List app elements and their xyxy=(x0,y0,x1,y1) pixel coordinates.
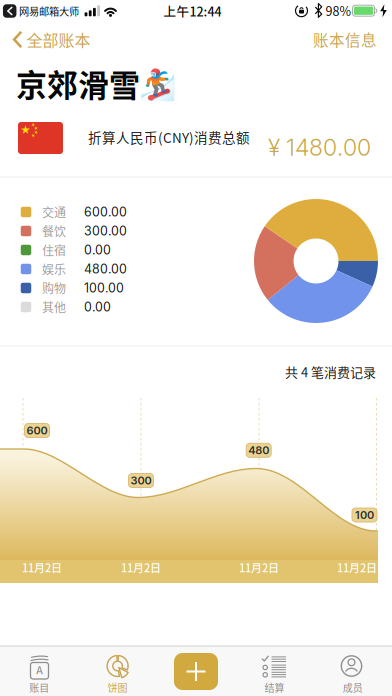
staticText: ¥ 1480.00 xyxy=(268,134,371,161)
staticText: 300.00 xyxy=(84,223,127,238)
staticText: 480.00 xyxy=(84,261,127,276)
staticText: 账本信息 xyxy=(313,28,377,51)
staticText: 账目 xyxy=(29,680,49,695)
staticText: 折算人民币(CNY)消费总额 xyxy=(88,127,250,147)
staticText: 11月2日 xyxy=(239,559,279,575)
staticText: 娱乐 xyxy=(42,260,66,278)
staticText: 300 xyxy=(130,474,151,487)
staticText: 0.00 xyxy=(84,299,111,314)
staticText: 购物 xyxy=(42,279,66,297)
button[interactable]: 饼图 xyxy=(0,0,392,696)
staticText: 100.00 xyxy=(84,280,124,295)
staticText: 共 4 笔消费记录 xyxy=(285,362,376,381)
staticText: 11月2日 xyxy=(337,559,377,575)
staticText: 结算 xyxy=(264,680,284,695)
staticText: 成员 xyxy=(343,680,363,695)
staticText: 交通 xyxy=(42,203,66,221)
staticText: A xyxy=(36,665,43,677)
button[interactable]: 账本信息 xyxy=(0,0,392,696)
staticText: 100 xyxy=(355,508,374,522)
staticText: 全部账本 xyxy=(26,28,90,51)
staticText: 11月2日 xyxy=(121,559,161,575)
staticText: 京郊滑雪 xyxy=(16,61,140,105)
staticText: 11月2日 xyxy=(22,559,62,575)
staticText: 上午12:44 xyxy=(163,2,221,20)
staticText: 480 xyxy=(248,444,269,457)
staticText: 600 xyxy=(26,424,47,437)
button[interactable]: 添加消费 xyxy=(0,0,392,696)
staticText: 饼图 xyxy=(108,680,128,695)
staticText: 餐饮 xyxy=(42,222,66,240)
button[interactable]: 成员 xyxy=(0,0,392,696)
staticText: 🏂 xyxy=(138,67,175,102)
staticText: 600.00 xyxy=(84,204,127,219)
staticText: 住宿 xyxy=(42,241,66,259)
button[interactable]: 全部账本 xyxy=(0,0,392,696)
staticText: 网易邮箱大师 xyxy=(19,4,79,18)
button[interactable]: 结算 xyxy=(0,0,392,696)
staticText: 0.00 xyxy=(84,242,111,257)
staticText: 98% xyxy=(325,1,351,20)
button[interactable]: A xyxy=(0,0,392,696)
staticText: 其他 xyxy=(42,298,66,316)
